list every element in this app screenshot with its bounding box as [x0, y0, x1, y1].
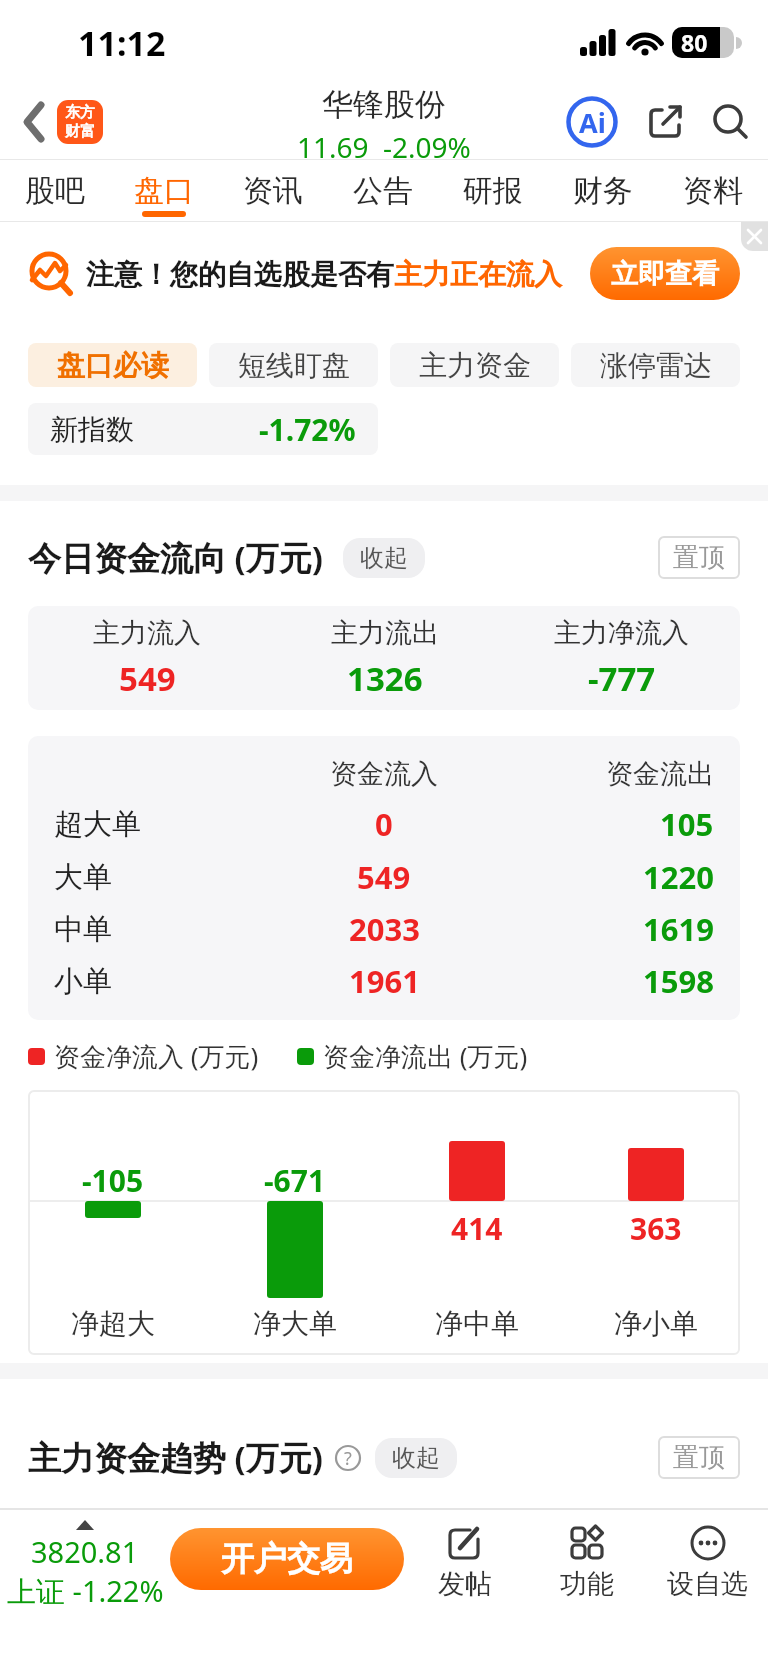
- staticText: ?: [344, 1446, 352, 1471]
- staticText: 105: [660, 803, 714, 845]
- staticText: 资金流入: [330, 757, 438, 791]
- staticText: 置顶: [673, 541, 725, 574]
- button[interactable]: 公告: [328, 160, 438, 221]
- button[interactable]: 资料: [658, 160, 768, 221]
- staticText: 大单: [54, 859, 112, 896]
- staticText: 盘口: [134, 172, 194, 210]
- staticText: 1619: [643, 908, 714, 950]
- button[interactable]: 开户交易: [170, 1528, 404, 1590]
- staticText: 财务: [573, 172, 633, 210]
- staticText: 资讯: [243, 172, 303, 210]
- staticText: 设自选: [667, 1567, 748, 1601]
- staticText: 3820.81: [31, 1532, 139, 1571]
- staticText: 东方: [65, 103, 95, 122]
- staticText: 净中单: [435, 1306, 519, 1341]
- staticText: 549: [119, 656, 176, 701]
- button[interactable]: [646, 103, 684, 141]
- staticText: 立即查看: [611, 257, 719, 291]
- staticText: 净大单: [253, 1306, 337, 1341]
- button[interactable]: 东方: [57, 100, 103, 144]
- staticText: 549: [357, 856, 411, 898]
- button[interactable]: 研报: [438, 160, 548, 221]
- button[interactable]: 置顶: [658, 1436, 740, 1479]
- staticText: 主力净流入: [554, 616, 689, 650]
- staticText: 功能: [560, 1567, 614, 1601]
- staticText: 2033: [349, 908, 420, 950]
- button[interactable]: 功能: [526, 1510, 647, 1662]
- staticText: 1598: [643, 960, 714, 1002]
- staticText: Ai: [579, 104, 606, 141]
- staticText: 主力流入: [93, 616, 201, 650]
- button[interactable]: 3820.81: [0, 1510, 170, 1662]
- button[interactable]: 股吧: [0, 160, 109, 221]
- staticText: 资金净流入 (万元): [54, 1038, 259, 1074]
- staticText: 1961: [349, 960, 420, 1002]
- staticText: 80: [681, 27, 708, 58]
- staticText: 上证 -1.22%: [7, 1571, 164, 1611]
- button[interactable]: 立即查看: [590, 247, 740, 300]
- staticText: 超大单: [54, 806, 141, 843]
- staticText: 股吧: [25, 172, 85, 210]
- staticText: -2.09%: [383, 128, 471, 159]
- staticText: 盘口必读: [57, 348, 169, 383]
- staticText: 净超大: [71, 1306, 155, 1341]
- button[interactable]: [741, 222, 768, 251]
- staticText: 中单: [54, 911, 112, 948]
- staticText: 1326: [347, 656, 423, 701]
- staticText: 资金流出: [606, 757, 714, 791]
- staticText: 主力流出: [331, 616, 439, 650]
- button[interactable]: 主力资金: [390, 343, 559, 387]
- button[interactable]: 短线盯盘: [209, 343, 378, 387]
- staticText: 主力资金: [419, 348, 531, 383]
- staticText: 0: [375, 803, 393, 845]
- button[interactable]: 盘口必读: [28, 343, 197, 387]
- staticText: 开户交易: [221, 1538, 353, 1580]
- staticText: -105: [82, 1160, 144, 1201]
- staticText: 净小单: [614, 1306, 698, 1341]
- staticText: 1220: [643, 856, 714, 898]
- staticText: 小单: [54, 963, 112, 1000]
- staticText: 财富: [65, 122, 95, 141]
- staticText: 研报: [463, 172, 523, 210]
- button[interactable]: 收起: [343, 538, 425, 578]
- staticText: -1.72%: [259, 409, 356, 450]
- staticText: 收起: [360, 543, 408, 573]
- staticText: 11.69: [297, 128, 369, 159]
- staticText: 11:12: [78, 20, 166, 66]
- button[interactable]: 发帖: [404, 1510, 526, 1662]
- button[interactable]: Ai: [566, 96, 618, 148]
- button[interactable]: 财务: [548, 160, 658, 221]
- staticText: 涨停雷达: [600, 348, 712, 383]
- button[interactable]: 资讯: [218, 160, 328, 221]
- button[interactable]: 新指数: [28, 403, 378, 455]
- button[interactable]: [712, 103, 750, 141]
- staticText: 414: [451, 1208, 503, 1249]
- button[interactable]: 盘口: [109, 160, 218, 221]
- button[interactable]: [24, 103, 44, 141]
- staticText: 置顶: [673, 1441, 725, 1474]
- staticText: 今日资金流向 (万元): [28, 535, 323, 580]
- staticText: 发帖: [438, 1567, 492, 1601]
- staticText: 363: [630, 1208, 682, 1249]
- staticText: 注意！您的自选股是否有主力正在流入: [86, 257, 562, 292]
- button[interactable]: 设自选: [647, 1510, 768, 1662]
- button[interactable]: 收起: [375, 1438, 457, 1478]
- staticText: 收起: [392, 1443, 440, 1473]
- staticText: -671: [264, 1160, 326, 1201]
- button[interactable]: 置顶: [658, 536, 740, 579]
- staticText: 资金净流出 (万元): [323, 1038, 528, 1074]
- staticText: 短线盯盘: [238, 348, 350, 383]
- staticText: 华锋股份: [322, 85, 446, 124]
- staticText: 资料: [683, 172, 743, 210]
- staticText: 公告: [353, 172, 413, 210]
- button[interactable]: 涨停雷达: [571, 343, 740, 387]
- staticText: 主力资金趋势 (万元): [28, 1435, 323, 1480]
- staticText: -777: [588, 656, 656, 701]
- staticText: 新指数: [50, 412, 134, 447]
